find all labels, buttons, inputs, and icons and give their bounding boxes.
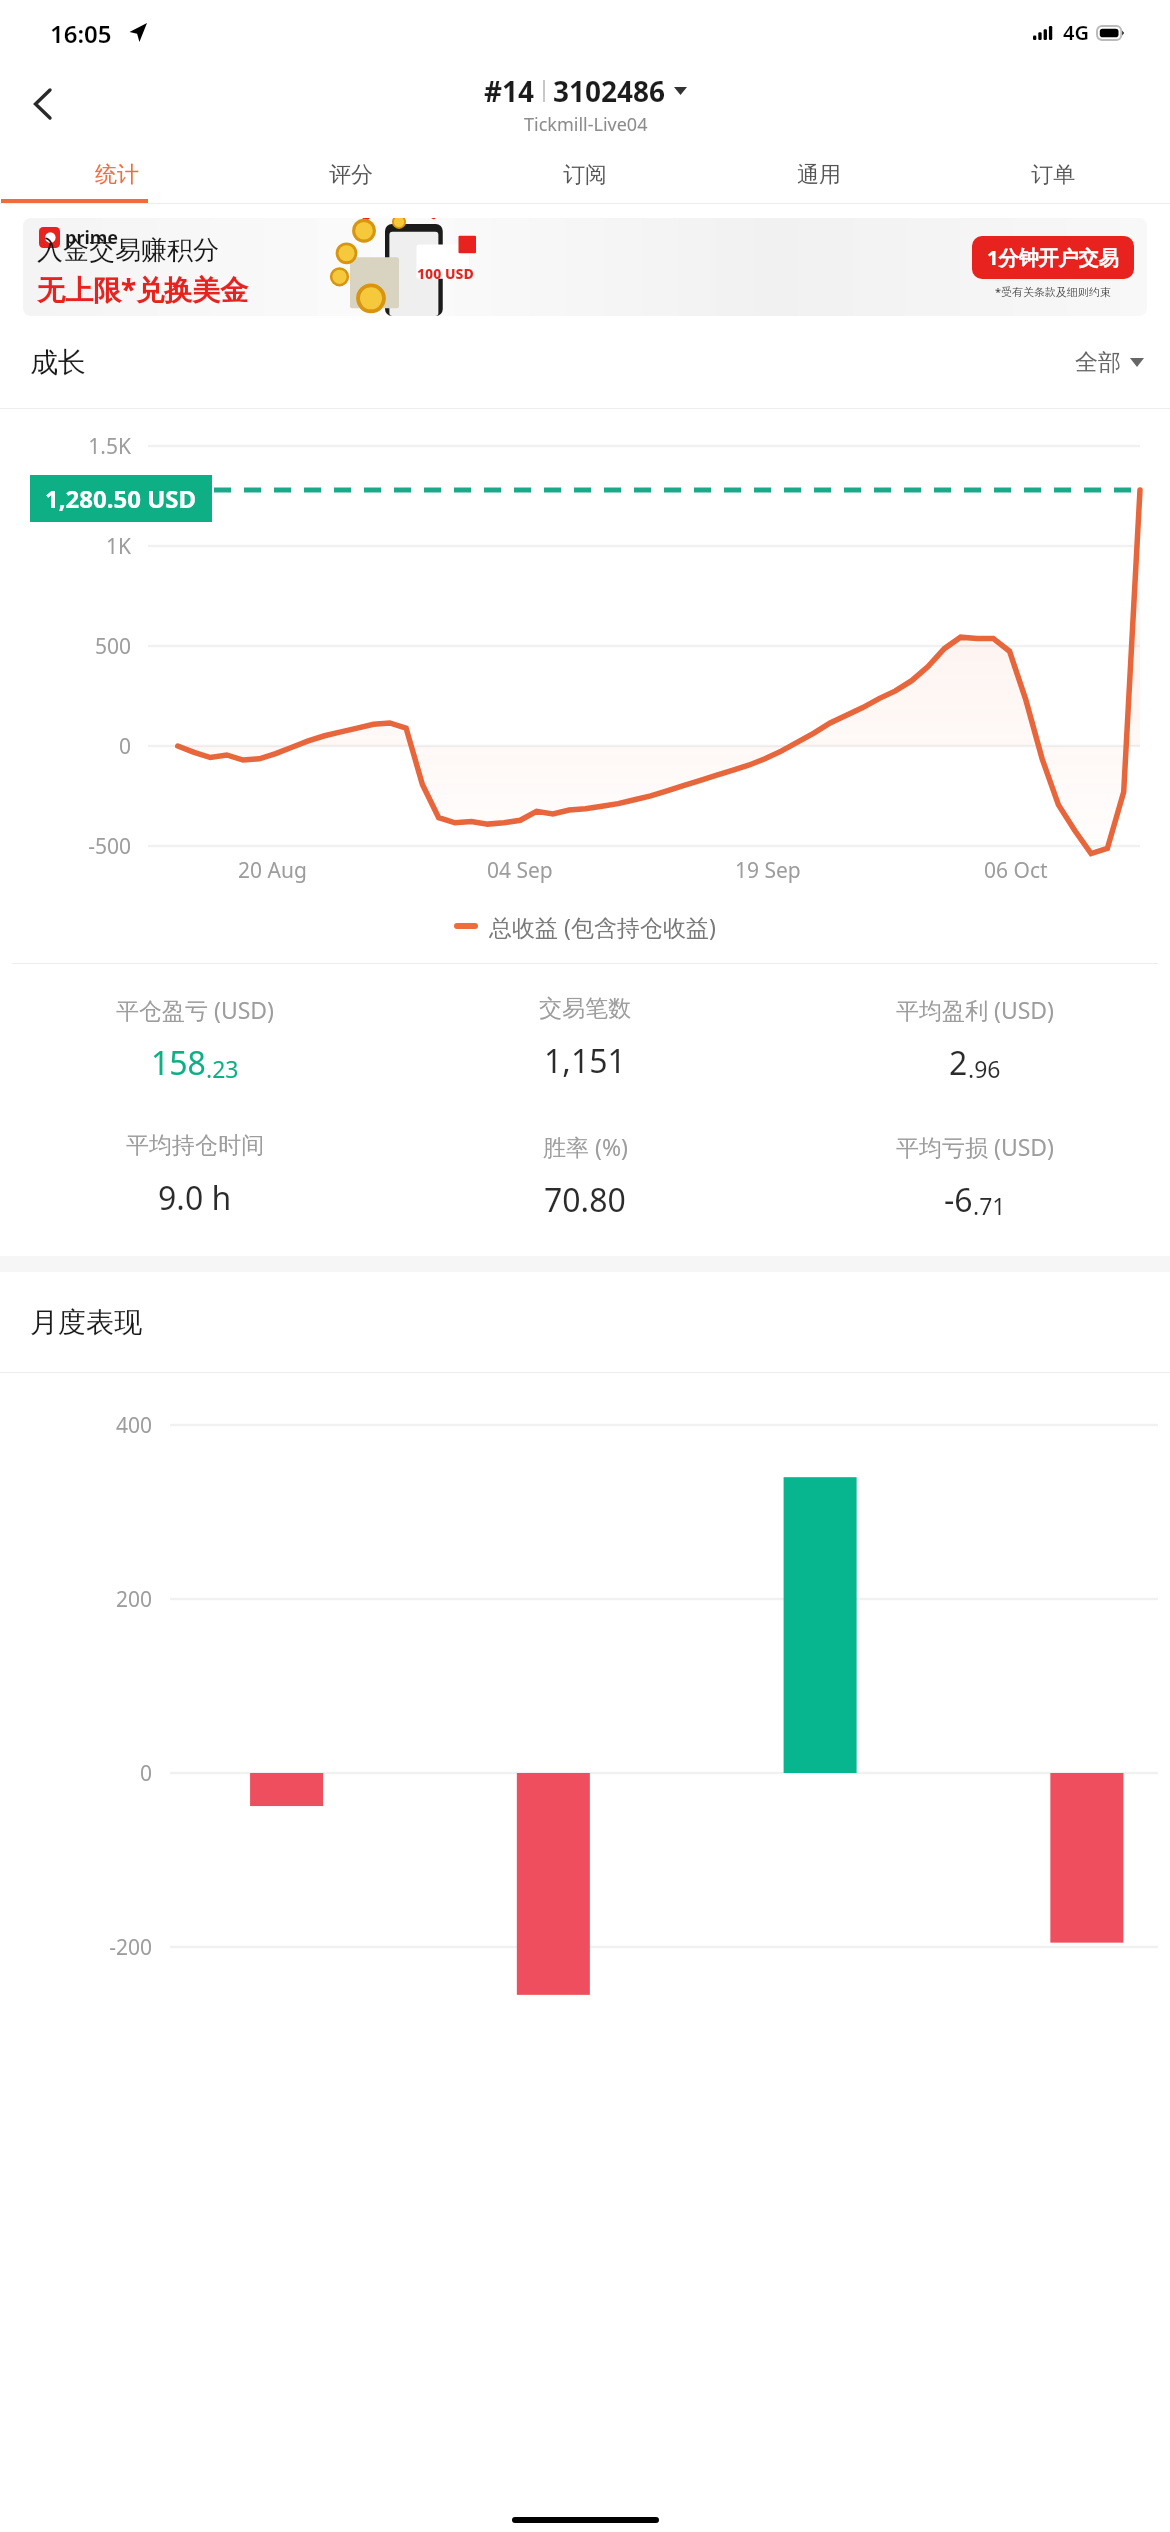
staticText: 400 xyxy=(0,1411,152,1440)
staticText: 全部 xyxy=(1075,348,1121,377)
staticText: 20 Aug xyxy=(238,856,307,885)
staticText: 0 xyxy=(0,732,131,761)
staticText: 总收益 (包含持仓收益) xyxy=(489,911,716,942)
staticText: 无上限*兑换美金 xyxy=(37,270,249,308)
button[interactable]: 平均持仓时间 xyxy=(0,1131,390,1220)
button[interactable]: 评分 xyxy=(234,146,468,204)
staticText: 4G xyxy=(1063,19,1089,46)
staticText: 平仓盈亏 (USD) xyxy=(116,994,275,1025)
staticText: 70.80 xyxy=(544,1178,626,1222)
staticText: 成长 xyxy=(30,345,86,380)
staticText: 订阅 xyxy=(563,161,607,189)
button[interactable]: 交易笔数 xyxy=(390,994,780,1083)
staticText: 月度表现 xyxy=(30,1305,142,1340)
staticText: 3102486 xyxy=(553,72,666,110)
staticText: 统计 xyxy=(95,161,139,189)
button[interactable]: prime xyxy=(23,218,1147,316)
staticText: 16:05 xyxy=(50,17,112,50)
staticText: 胜率 (%) xyxy=(543,1131,628,1162)
staticText: 500 xyxy=(0,632,131,661)
staticText: 19 Sep xyxy=(735,856,801,885)
staticText: #14 xyxy=(484,72,535,110)
staticText: 1分钟开户交易 xyxy=(987,244,1119,271)
staticText: -200 xyxy=(0,1933,152,1962)
staticText: 入金交易赚积分 xyxy=(37,234,219,267)
staticText: 交易笔数 xyxy=(539,994,631,1023)
staticText: 平均持仓时间 xyxy=(126,1131,264,1160)
staticText: 0 xyxy=(0,1759,152,1788)
button[interactable]: 订单 xyxy=(936,146,1170,204)
staticText: 2 xyxy=(949,1041,968,1085)
staticText: Tickmill-Live04 xyxy=(524,112,648,137)
button[interactable]: 全部 xyxy=(1075,348,1144,377)
staticText: prime xyxy=(65,225,119,250)
staticText: 200 xyxy=(0,1585,152,1614)
staticText: 1K xyxy=(0,532,131,561)
button[interactable]: 平仓盈亏 (USD) xyxy=(0,994,390,1085)
staticText: 9.0 h xyxy=(158,1176,232,1220)
button[interactable]: 通用 xyxy=(702,146,936,204)
button[interactable]: 平均盈利 (USD) xyxy=(780,994,1170,1085)
staticText: 订单 xyxy=(1031,161,1075,189)
staticText: -6 xyxy=(944,1178,973,1222)
staticText: .96 xyxy=(968,1053,1001,1084)
staticText: 通用 xyxy=(797,161,841,189)
staticText: 06 Oct xyxy=(984,856,1048,885)
staticText: 1.5K xyxy=(0,432,131,461)
staticText: 1,151 xyxy=(544,1039,626,1083)
staticText: -500 xyxy=(0,832,131,861)
staticText: 平均盈利 (USD) xyxy=(896,994,1055,1025)
staticText: .71 xyxy=(973,1190,1006,1221)
staticText: .23 xyxy=(206,1053,239,1084)
button[interactable]: Back xyxy=(16,78,68,130)
staticText: 评分 xyxy=(329,161,373,189)
button[interactable]: 统计 xyxy=(0,146,234,204)
button[interactable]: 1分钟开户交易 xyxy=(987,244,1119,271)
staticText: 04 Sep xyxy=(487,856,553,885)
button[interactable]: 平均亏损 (USD) xyxy=(780,1131,1170,1222)
staticText: 100 USD xyxy=(417,264,474,283)
staticText: 158 xyxy=(151,1041,206,1085)
button[interactable]: 胜率 (%) xyxy=(390,1131,780,1222)
button[interactable]: 订阅 xyxy=(468,146,702,204)
button[interactable]: #14 xyxy=(484,72,687,137)
staticText: 1,280.50 USD xyxy=(45,482,197,515)
staticText: 平均亏损 (USD) xyxy=(896,1131,1055,1162)
staticText: *受有关条款及细则约束 xyxy=(995,284,1112,299)
